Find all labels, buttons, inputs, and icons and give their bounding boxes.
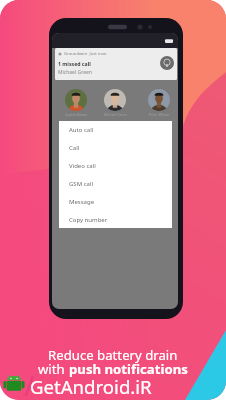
staticText: GetAndroid.iR xyxy=(30,374,152,399)
staticText: Auto call xyxy=(69,126,94,134)
staticText: push notifications xyxy=(69,360,188,378)
other: GetAndroid.iR logo xyxy=(3,375,25,393)
button[interactable]: Call xyxy=(59,139,172,157)
button[interactable]: Auto call xyxy=(59,121,172,139)
staticText: 1 missed call xyxy=(58,60,91,67)
button[interactable]: Michael Green xyxy=(98,89,132,117)
staticText: Call xyxy=(69,144,80,152)
button[interactable]: Sophia Brown xyxy=(59,89,93,117)
staticText: Michael Green xyxy=(104,112,127,117)
staticText: Sophia Brown xyxy=(65,112,88,117)
button[interactable]: GSM call xyxy=(59,175,172,193)
button[interactable]: Video call xyxy=(59,157,172,175)
staticText: Reduce battery drain xyxy=(48,346,178,364)
button[interactable]: Peter Wilson xyxy=(142,89,176,117)
staticText: with xyxy=(38,360,69,378)
button[interactable]: Copy number xyxy=(59,211,172,228)
button[interactable]: Groundwire Just now xyxy=(55,48,177,80)
staticText: Michael Green xyxy=(58,69,92,76)
staticText: Groundwire Just now xyxy=(64,51,107,57)
staticText: Message xyxy=(69,198,95,206)
staticText: GSM call xyxy=(69,180,94,188)
button[interactable]: Message xyxy=(59,193,172,211)
staticText: Peter Wilson xyxy=(149,112,170,117)
staticText: Copy number xyxy=(69,216,108,224)
staticText: Video call xyxy=(69,162,96,170)
button[interactable]: Groundwire app xyxy=(160,56,174,70)
